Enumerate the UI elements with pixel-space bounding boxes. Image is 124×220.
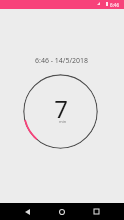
button[interactable]: Recent apps	[84, 203, 108, 220]
button[interactable]: Back	[15, 203, 39, 220]
button[interactable]: Home	[50, 203, 74, 220]
staticText: 6:46 - 14/5/2018	[35, 56, 89, 66]
button[interactable]: Timer, 7 minutes remaining	[23, 74, 98, 149]
staticText: 7	[54, 92, 68, 125]
other: Mobile signal	[97, 2, 100, 5]
staticText: 6:46	[110, 2, 120, 8]
staticText: min	[59, 119, 67, 124]
